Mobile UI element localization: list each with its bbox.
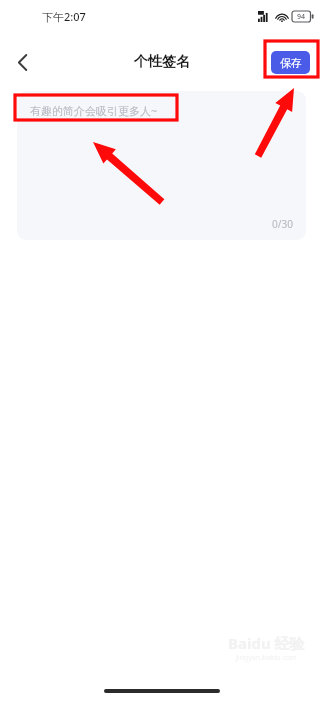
staticText: jingyan.baidu.com bbox=[236, 653, 297, 663]
staticText: 个性签名 bbox=[134, 53, 190, 71]
staticText: 94 bbox=[297, 12, 306, 22]
staticText: 0/30 bbox=[272, 217, 293, 231]
staticText: 下午2:07 bbox=[42, 9, 86, 24]
staticText: 有趣的简介会吸引更多人~ bbox=[30, 103, 158, 118]
button[interactable]: 有趣的简介会吸引更多人~ bbox=[17, 91, 306, 240]
button[interactable]: Back bbox=[0, 44, 44, 80]
button[interactable]: 保存 bbox=[271, 51, 310, 74]
staticText: 保存 bbox=[280, 56, 302, 70]
staticText: Baidu 经验 bbox=[228, 633, 305, 653]
